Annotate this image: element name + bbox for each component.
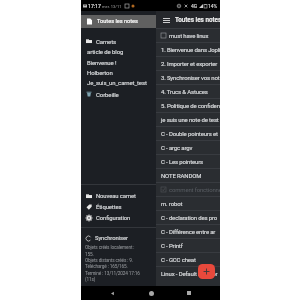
button[interactable]: Nouveau carnet bbox=[81, 191, 156, 201]
staticText: Terminé : 13/11/2024 17:16 bbox=[85, 271, 140, 277]
button[interactable]: 5. Politique de confiden bbox=[156, 98, 220, 112]
staticText: m. robot bbox=[161, 200, 183, 207]
button[interactable]: Bienvenue ! bbox=[81, 57, 156, 67]
button[interactable]: C - Double pointeurs et bbox=[156, 126, 220, 140]
button[interactable]: Synchroniser bbox=[81, 233, 156, 243]
button[interactable]: Configuration bbox=[81, 213, 156, 223]
staticText: C - Les pointeurs bbox=[161, 158, 203, 165]
button[interactable]: 2. Importer et exporter bbox=[156, 56, 220, 70]
button[interactable]: 3. Synchroniser vos not bbox=[156, 70, 220, 84]
staticText: (11s) bbox=[85, 277, 96, 283]
staticText: Holberton bbox=[87, 69, 113, 76]
button[interactable]: C - Les pointeurs bbox=[156, 154, 220, 168]
staticText: Bienvenue ! bbox=[87, 59, 117, 66]
staticText: C - argc argv bbox=[161, 144, 193, 151]
staticText: C - GCC cheat bbox=[161, 256, 196, 263]
button[interactable]: m. robot bbox=[156, 196, 220, 210]
staticText: Je_suis_un_carnet_test bbox=[87, 79, 147, 86]
button[interactable]: Back bbox=[105, 286, 119, 300]
button[interactable]: Recent apps bbox=[182, 286, 196, 300]
button[interactable]: C - Printf bbox=[156, 238, 220, 252]
staticText: Synchroniser bbox=[95, 235, 128, 242]
staticText: Objets créés localement : bbox=[85, 245, 135, 251]
button[interactable]: Holberton bbox=[81, 67, 156, 77]
button[interactable]: C - Différence entre ar bbox=[156, 224, 220, 238]
staticText: Toutes les notes bbox=[175, 16, 220, 23]
button[interactable]: article de blog bbox=[81, 46, 156, 56]
button[interactable]: Étiquettes bbox=[81, 202, 156, 212]
staticText: must have linux bbox=[169, 32, 209, 39]
button[interactable]: 4. Trucs & Astuces bbox=[156, 84, 220, 98]
staticText: Corbeille bbox=[96, 91, 119, 98]
staticText: 1. Bienvenue dans Jopli bbox=[161, 46, 220, 53]
staticText: comment fonctionne bbox=[169, 186, 220, 193]
staticText: Objets distants créés : 9. bbox=[85, 258, 133, 264]
staticText: C - Différence entre ar bbox=[161, 228, 216, 235]
button[interactable]: must have linux bbox=[156, 28, 220, 42]
staticText: C - Double pointeurs et bbox=[161, 130, 218, 137]
button[interactable]: je suis une note de test bbox=[156, 112, 220, 126]
staticText: 17:17 bbox=[88, 3, 101, 9]
staticText: article de blog bbox=[87, 48, 124, 55]
button[interactable]: 1. Bienvenue dans Jopli bbox=[156, 42, 220, 56]
staticText: 14% bbox=[208, 3, 218, 9]
staticText: 3. Synchroniser vos not bbox=[161, 74, 220, 81]
button[interactable]: NOTE RANDOM bbox=[156, 168, 220, 182]
button[interactable]: Carnets bbox=[81, 36, 156, 46]
staticText: Nouveau carnet bbox=[96, 193, 136, 200]
staticText: Carnets bbox=[96, 38, 117, 45]
button[interactable]: Linux - Default director bbox=[156, 266, 220, 280]
staticText: C - declaration des pro bbox=[161, 214, 218, 221]
button[interactable]: Toutes les notes bbox=[81, 15, 156, 28]
button[interactable]: C - GCC cheat bbox=[156, 252, 220, 266]
staticText: Linux - Default director bbox=[161, 270, 218, 277]
staticText: 155. bbox=[85, 252, 94, 258]
staticText: Étiquettes bbox=[96, 204, 122, 211]
button[interactable]: comment fonctionne bbox=[156, 182, 220, 196]
button[interactable]: Home bbox=[144, 286, 158, 300]
button[interactable]: C - argc argv bbox=[156, 140, 220, 154]
staticText: C - Printf bbox=[161, 242, 183, 249]
staticText: 4G bbox=[191, 3, 198, 9]
staticText: mer. 13/11 bbox=[102, 4, 122, 9]
staticText: 4. Trucs & Astuces bbox=[161, 88, 208, 95]
staticText: 2. Importer et exporter bbox=[161, 60, 218, 67]
button[interactable]: Open navigation menu bbox=[162, 16, 170, 24]
button[interactable]: New note bbox=[198, 264, 215, 279]
button[interactable]: Je_suis_un_carnet_test bbox=[81, 77, 156, 87]
staticText: Toutes les notes bbox=[97, 18, 138, 25]
staticText: NOTE RANDOM bbox=[161, 172, 202, 179]
button[interactable]: C - declaration des pro bbox=[156, 210, 220, 224]
button[interactable]: Corbeille bbox=[81, 89, 156, 99]
staticText: je suis une note de test bbox=[161, 116, 219, 123]
staticText: 5. Politique de confiden bbox=[161, 102, 220, 109]
staticText: Téléchargé : 165/165. bbox=[85, 264, 128, 270]
staticText: Configuration bbox=[96, 215, 131, 222]
